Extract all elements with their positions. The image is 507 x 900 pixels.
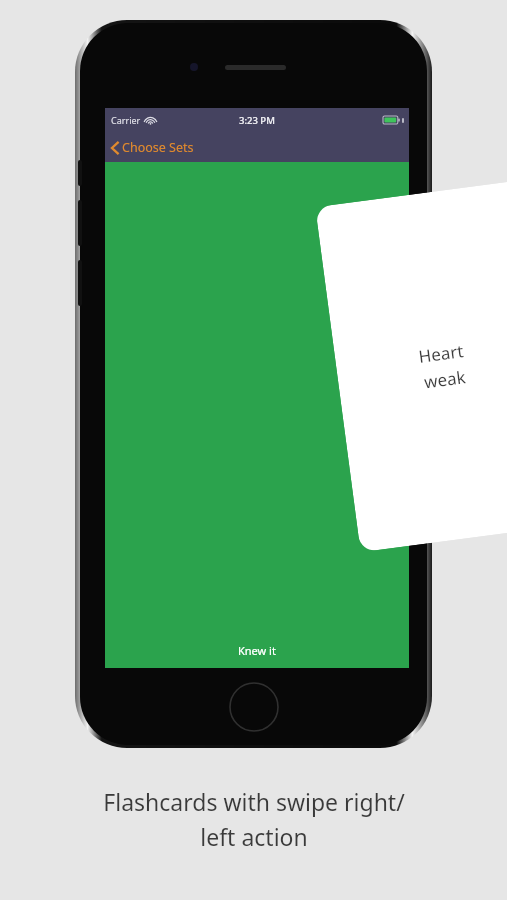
staticText: Carrier bbox=[111, 114, 141, 126]
button[interactable]: Knew it bbox=[220, 639, 294, 662]
staticText: Choose Sets bbox=[122, 139, 194, 156]
staticText: Flashcards with swipe right/ bbox=[103, 786, 405, 817]
staticText: Knew it bbox=[238, 643, 276, 658]
staticText: Heart bbox=[417, 339, 465, 368]
button[interactable]: Choose Sets bbox=[105, 135, 204, 160]
button[interactable]: Heart bbox=[315, 180, 507, 552]
staticText: 3:23 PM bbox=[239, 114, 275, 127]
staticText: weak bbox=[422, 365, 467, 393]
staticText: left action bbox=[200, 821, 308, 852]
button[interactable]: Home bbox=[229, 682, 279, 732]
